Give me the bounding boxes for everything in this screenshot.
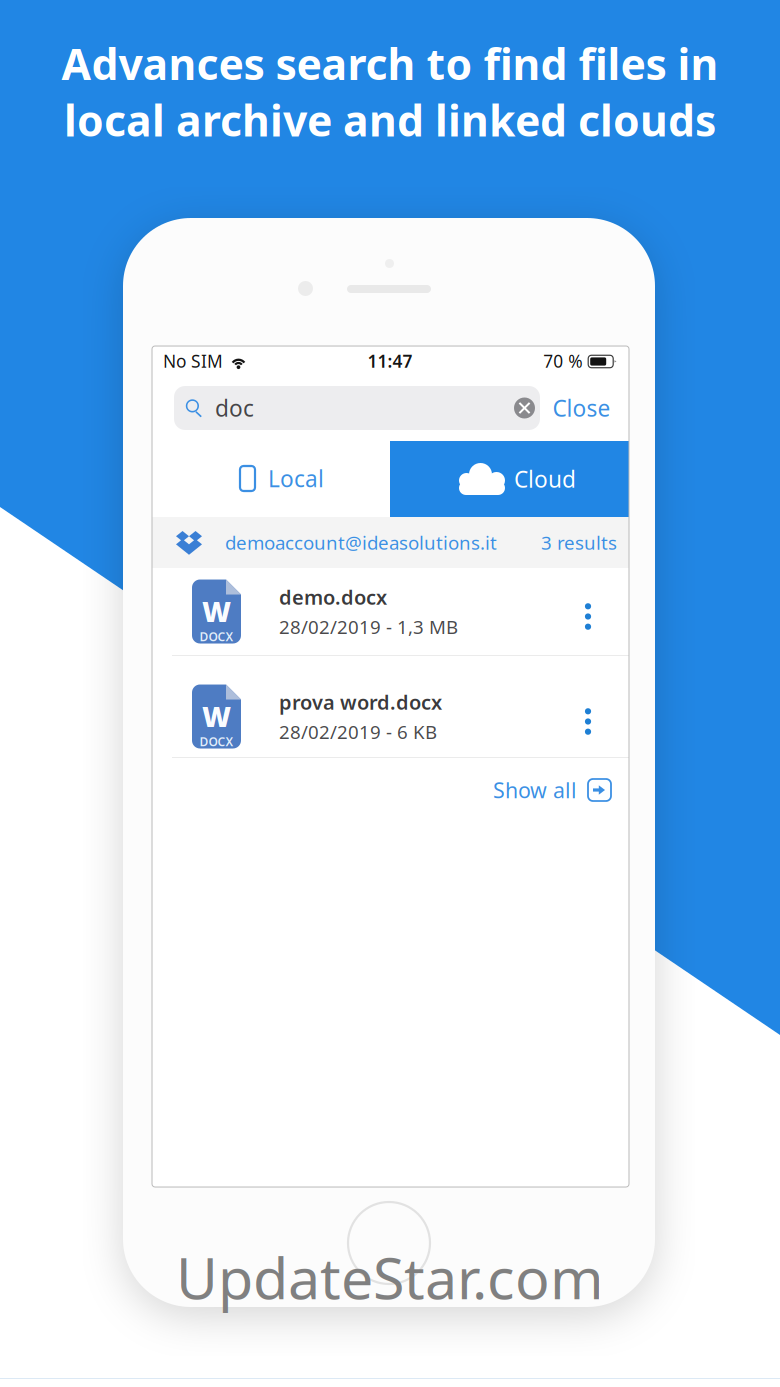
staticText: Local [268,463,324,493]
staticText: W [202,592,231,630]
button[interactable]: Show all [493,776,611,804]
button[interactable]: W [152,656,629,757]
staticText: 3 results [541,530,617,555]
staticText: 28/02/2019 - 6 KB [279,719,437,744]
staticText: prova word.docx [279,689,442,715]
staticText: DOCX [199,734,233,749]
staticText: 11:47 [367,349,412,372]
staticText: 70 % [543,349,582,372]
button[interactable]: Close [540,386,618,430]
staticText: Cloud [514,464,576,494]
staticText: UpdateStar.com [176,1239,604,1315]
button[interactable]: W [152,568,629,655]
staticText: 28/02/2019 - 1,3 MB [279,614,458,639]
staticText: Advances search to find files in [61,35,718,92]
staticText: local archive and linked clouds [64,92,716,148]
staticText: Close [552,393,610,423]
button[interactable]: Cloud [390,440,629,517]
staticText: DOCX [199,629,233,644]
staticText: No SIM [163,349,223,372]
button[interactable]: demoaccount@ideasolutions.it [152,517,629,568]
staticText: demo.docx [279,584,387,610]
staticText: W [202,697,231,735]
button[interactable]: Clear search text [514,397,535,418]
button[interactable]: Local [152,440,390,517]
staticText: demoaccount@ideasolutions.it [225,530,497,555]
staticText: Show all [493,776,577,804]
staticText: doc [215,393,254,423]
